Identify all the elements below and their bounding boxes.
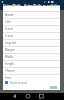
staticText: Using Plotly - Using Plotly as a plotter bbox=[3, 4, 60, 8]
button[interactable]: Font bbox=[3, 74, 60, 81]
staticText: Legend bbox=[5, 41, 16, 45]
button[interactable] bbox=[50, 86, 57, 89]
staticText: Font bbox=[5, 76, 12, 80]
button[interactable]: X axis bbox=[3, 25, 60, 32]
button[interactable]: Height bbox=[3, 60, 60, 67]
button[interactable]: Title bbox=[3, 18, 60, 25]
staticText: X axis bbox=[5, 27, 14, 31]
button[interactable]: Legend bbox=[3, 39, 60, 46]
staticText: Name bbox=[5, 13, 14, 17]
button[interactable]: Show legend bbox=[5, 81, 60, 84]
staticText: Margin bbox=[5, 48, 16, 52]
button[interactable]: Y axis bbox=[3, 32, 60, 39]
staticText: Width bbox=[5, 55, 14, 59]
staticText: Theme bbox=[5, 69, 15, 73]
staticText: Y axis bbox=[5, 34, 13, 38]
staticText: Title bbox=[5, 20, 11, 24]
button[interactable]: Name bbox=[3, 11, 60, 18]
staticText: Height bbox=[5, 62, 15, 66]
button[interactable]: Theme bbox=[3, 67, 60, 74]
button[interactable]: Margin bbox=[3, 46, 60, 53]
button[interactable]: Width bbox=[3, 53, 60, 60]
staticText: Show legend bbox=[10, 81, 27, 84]
